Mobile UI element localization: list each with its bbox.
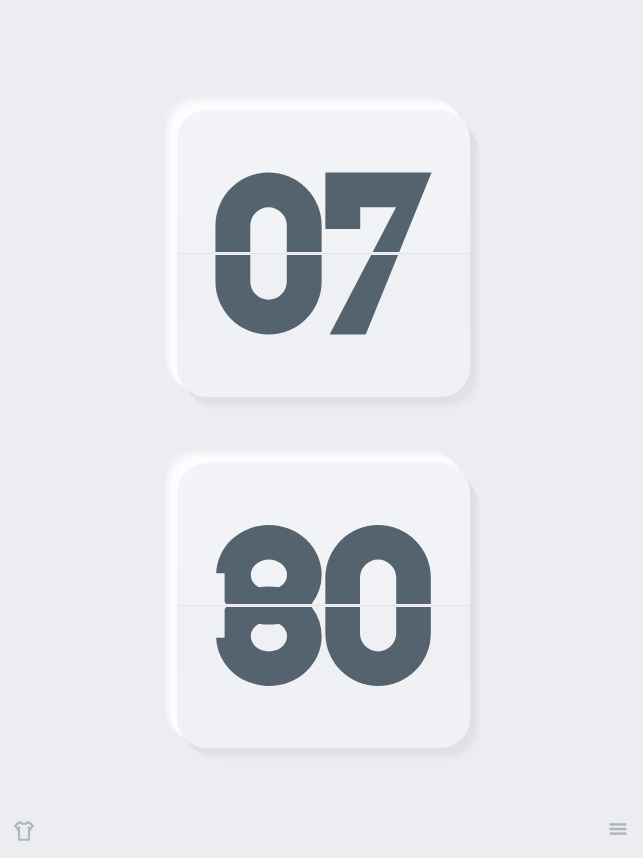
button[interactable]: Menu — [596, 807, 640, 851]
button[interactable]: Hours 07 — [175, 110, 468, 397]
button[interactable]: Theme — [2, 808, 46, 852]
